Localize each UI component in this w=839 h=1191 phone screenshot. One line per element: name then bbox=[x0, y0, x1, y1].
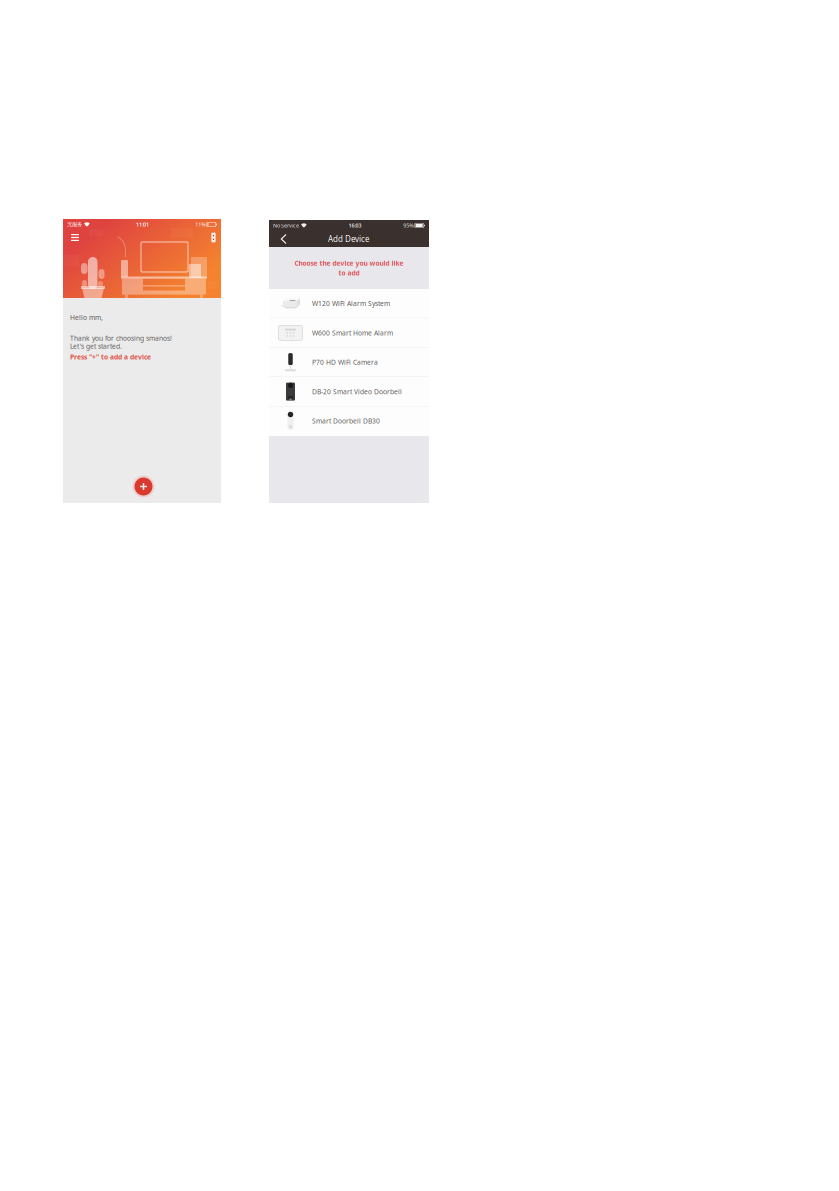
staticText: Choose the device you would like bbox=[294, 259, 403, 267]
staticText: 11:01 bbox=[136, 221, 149, 228]
staticText: DB-20 Smart Video Doorbell bbox=[312, 387, 402, 396]
staticText: 无服务 bbox=[67, 221, 82, 228]
staticText: Smart Doorbell DB30 bbox=[312, 417, 380, 425]
staticText: Add Device bbox=[328, 234, 370, 244]
staticText: 16:03 bbox=[348, 222, 361, 229]
button[interactable]: Add device bbox=[128, 471, 158, 501]
staticText: No Service bbox=[273, 222, 299, 229]
button[interactable]: Back bbox=[273, 231, 295, 247]
staticText: Let's get started. bbox=[70, 342, 122, 351]
staticText: to add bbox=[338, 268, 359, 277]
staticText: 11% bbox=[195, 221, 205, 228]
staticText: Press "+" to add a device bbox=[70, 353, 151, 361]
button[interactable]: P70 HD WiFi Camera bbox=[269, 348, 429, 377]
button[interactable]: W600 Smart Home Alarm bbox=[269, 318, 429, 348]
staticText: Thank you for choosing smanos! bbox=[70, 334, 172, 343]
button[interactable]: DB-20 Smart Video Doorbell bbox=[269, 377, 429, 407]
button[interactable]: W120 WiFi Alarm System bbox=[269, 289, 429, 318]
button[interactable]: Smart Doorbell DB30 bbox=[269, 407, 429, 436]
staticText: P70 HD WiFi Camera bbox=[312, 358, 378, 367]
staticText: W600 Smart Home Alarm bbox=[312, 328, 393, 337]
staticText: Hello mm, bbox=[70, 313, 103, 322]
staticText: W120 WiFi Alarm System bbox=[312, 299, 390, 308]
staticText: 95% bbox=[403, 222, 413, 229]
button[interactable]: Menu bbox=[67, 230, 83, 245]
button[interactable]: Remote control bbox=[207, 230, 220, 245]
